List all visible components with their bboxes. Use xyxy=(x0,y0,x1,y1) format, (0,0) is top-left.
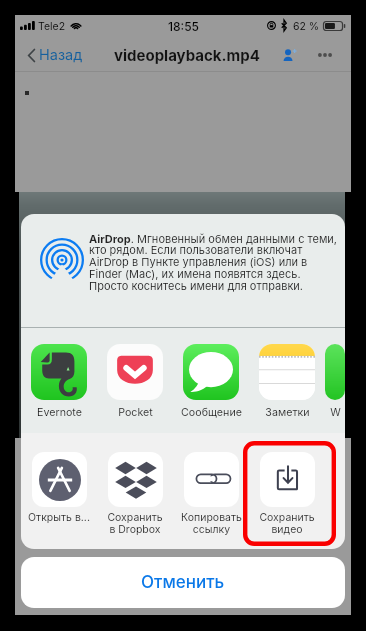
staticText: Назад xyxy=(39,46,83,64)
staticText: Сообщение xyxy=(181,406,242,419)
staticText: Открыть в... xyxy=(28,511,90,524)
button[interactable]: More options xyxy=(312,47,338,63)
button[interactable]: Pocket xyxy=(97,328,173,433)
staticText: Заметки xyxy=(265,406,310,419)
staticText: AirDrop. Мгновенный обмен данными с теми… xyxy=(89,232,342,293)
staticText: W xyxy=(330,406,341,419)
button[interactable]: Открыть в... xyxy=(21,433,97,549)
button[interactable]: Сохранить в Dropbox xyxy=(97,433,173,549)
button[interactable]: Отменить xyxy=(21,557,345,608)
staticText: Tele2 xyxy=(38,20,66,33)
button[interactable]: Add person xyxy=(277,43,303,67)
staticText: 62 % xyxy=(293,20,320,33)
button[interactable]: Evernote xyxy=(21,328,97,433)
staticText: videoplayback.mp4 xyxy=(114,46,260,64)
staticText: 18:55 xyxy=(168,19,200,34)
staticText: Сохранить в Dropbox xyxy=(107,511,163,536)
button[interactable]: W xyxy=(325,328,345,433)
button[interactable]: Сообщение xyxy=(173,328,249,433)
staticText: Отменить xyxy=(141,572,225,593)
button[interactable]: Заметки xyxy=(249,328,325,433)
staticText: Сохранить видео xyxy=(259,511,315,536)
button[interactable]: Сохранить видео xyxy=(249,433,325,549)
staticText: Pocket xyxy=(118,406,153,419)
staticText: Копировать ссылку xyxy=(181,511,242,536)
staticText: Evernote xyxy=(37,406,82,419)
button[interactable]: Назад xyxy=(15,41,93,69)
button[interactable]: Копировать ссылку xyxy=(173,433,249,549)
